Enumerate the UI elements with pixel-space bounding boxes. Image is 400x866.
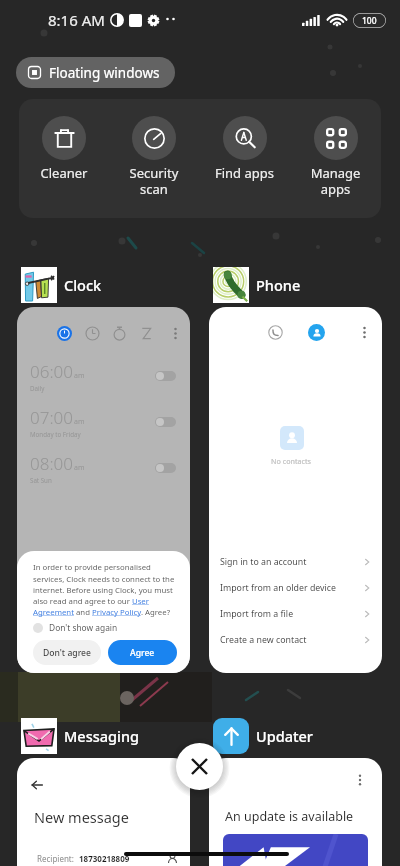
staticText: 8:16 AM [48, 10, 105, 30]
button[interactable]: Import from a file [209, 601, 382, 627]
staticText: am [74, 417, 85, 427]
staticText: New message [34, 807, 129, 827]
staticText: Don't agree [43, 647, 91, 659]
staticText: Sign in to an account [220, 556, 307, 568]
staticText: Messaging [64, 726, 140, 746]
button[interactable]: Security scan [109, 99, 199, 218]
button[interactable]: Don't agree [33, 640, 101, 665]
button[interactable]: Toggle alarm [155, 417, 176, 427]
staticText: In order to provide personalised service… [33, 562, 177, 617]
staticText: Daily [30, 384, 45, 392]
staticText: 100 [362, 15, 377, 27]
staticText: Clock [64, 275, 102, 295]
button[interactable]: Create a new contact [209, 627, 382, 653]
staticText: Agree [130, 647, 155, 659]
button[interactable]: Cleaner [19, 99, 109, 218]
button[interactable]: Agree [108, 640, 177, 665]
staticText: 06:00 [30, 360, 73, 383]
staticText: 18730218809 [79, 853, 130, 864]
staticText: An update is available [225, 808, 354, 825]
staticText: No contacts [271, 456, 312, 466]
staticText: am [74, 463, 85, 473]
staticText: Floating windows [49, 64, 160, 82]
button[interactable]: Don't show again [33, 622, 118, 633]
staticText: Security scan [109, 164, 199, 198]
button[interactable]: 06:00 [17, 307, 190, 673]
staticText: 08:00 [30, 452, 73, 475]
staticText: Monday to Friday [30, 430, 81, 438]
button[interactable]: Find apps [199, 99, 290, 218]
button[interactable]: Close all [176, 743, 223, 790]
button[interactable]: Manage apps [290, 99, 381, 218]
staticText: Phone [256, 275, 301, 295]
staticText: Import from a file [220, 608, 294, 620]
staticText: am [74, 371, 85, 381]
button[interactable]: Toggle alarm [155, 371, 176, 381]
button[interactable]: Floating windows [16, 57, 175, 88]
staticText: Don't show again [49, 622, 118, 633]
staticText: Recipient: [37, 853, 74, 864]
button[interactable]: New message [17, 758, 190, 866]
button[interactable]: Toggle alarm [155, 463, 176, 473]
button[interactable]: No contacts [209, 307, 382, 673]
button[interactable]: Import from an older device [209, 575, 382, 601]
staticText: Updater [256, 726, 313, 746]
staticText: 07:00 [30, 406, 73, 429]
staticText: Manage apps [290, 164, 381, 198]
staticText: Create a new contact [220, 634, 307, 646]
staticText: Cleaner [19, 164, 109, 182]
button[interactable]: Sign in to an account [209, 549, 382, 575]
staticText: Sat Sun [30, 476, 52, 484]
button[interactable]: An update is available [209, 758, 382, 866]
staticText: Find apps [199, 164, 290, 182]
staticText: Import from an older device [220, 582, 337, 594]
